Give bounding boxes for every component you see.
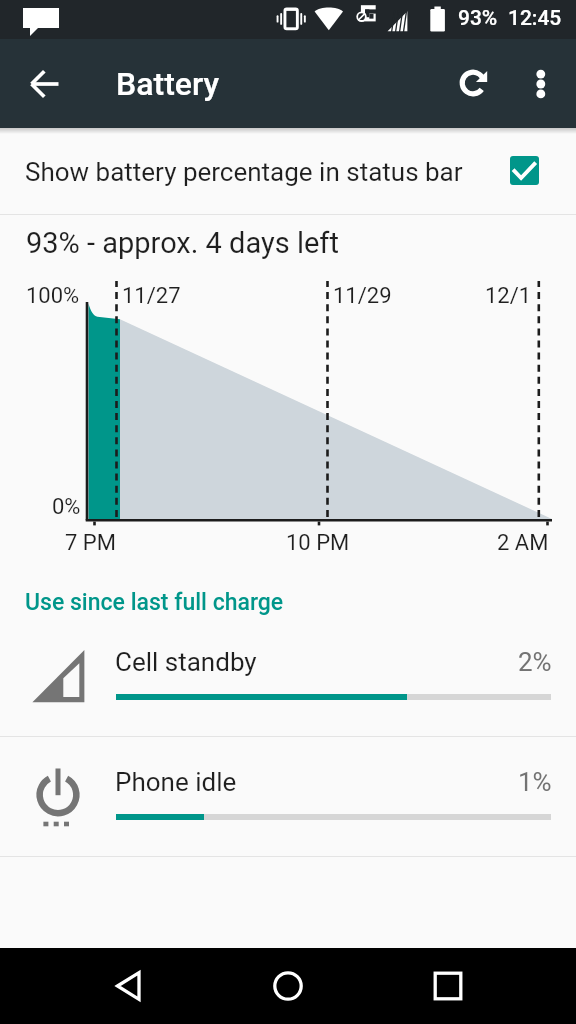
- button[interactable]: Show battery percentage in status bar: [0, 128, 576, 214]
- button[interactable]: Cell standby: [0, 636, 576, 756]
- button[interactable]: Refresh: [442, 52, 504, 114]
- staticText: Phone idle: [115, 767, 237, 797]
- staticText: 93% - approx. 4 days left: [26, 226, 339, 260]
- staticText: 7 PM: [65, 530, 116, 556]
- staticText: 2%: [518, 647, 552, 677]
- staticText: 100%: [26, 283, 80, 309]
- staticText: 12:45: [508, 6, 562, 31]
- staticText: Battery: [116, 65, 220, 103]
- staticText: 12/1: [485, 283, 532, 309]
- staticText: 11/29: [333, 283, 392, 309]
- staticText: Show battery percentage in status bar: [25, 157, 463, 187]
- button[interactable]: Phone idle: [0, 756, 576, 876]
- staticText: Use since last full charge: [25, 589, 284, 616]
- button[interactable]: Back: [98, 956, 158, 1016]
- staticText: 2 AM: [497, 530, 549, 556]
- button[interactable]: Home: [258, 956, 318, 1016]
- button[interactable]: More options: [512, 56, 568, 112]
- staticText: 1%: [518, 767, 552, 797]
- staticText: 10 PM: [286, 530, 350, 556]
- staticText: 11/27: [122, 283, 181, 309]
- staticText: 93%: [458, 6, 498, 31]
- staticText: Cell standby: [115, 647, 257, 677]
- staticText: 0%: [52, 494, 81, 520]
- button[interactable]: Recent apps: [418, 956, 478, 1016]
- button[interactable]: Navigate up: [14, 53, 76, 115]
